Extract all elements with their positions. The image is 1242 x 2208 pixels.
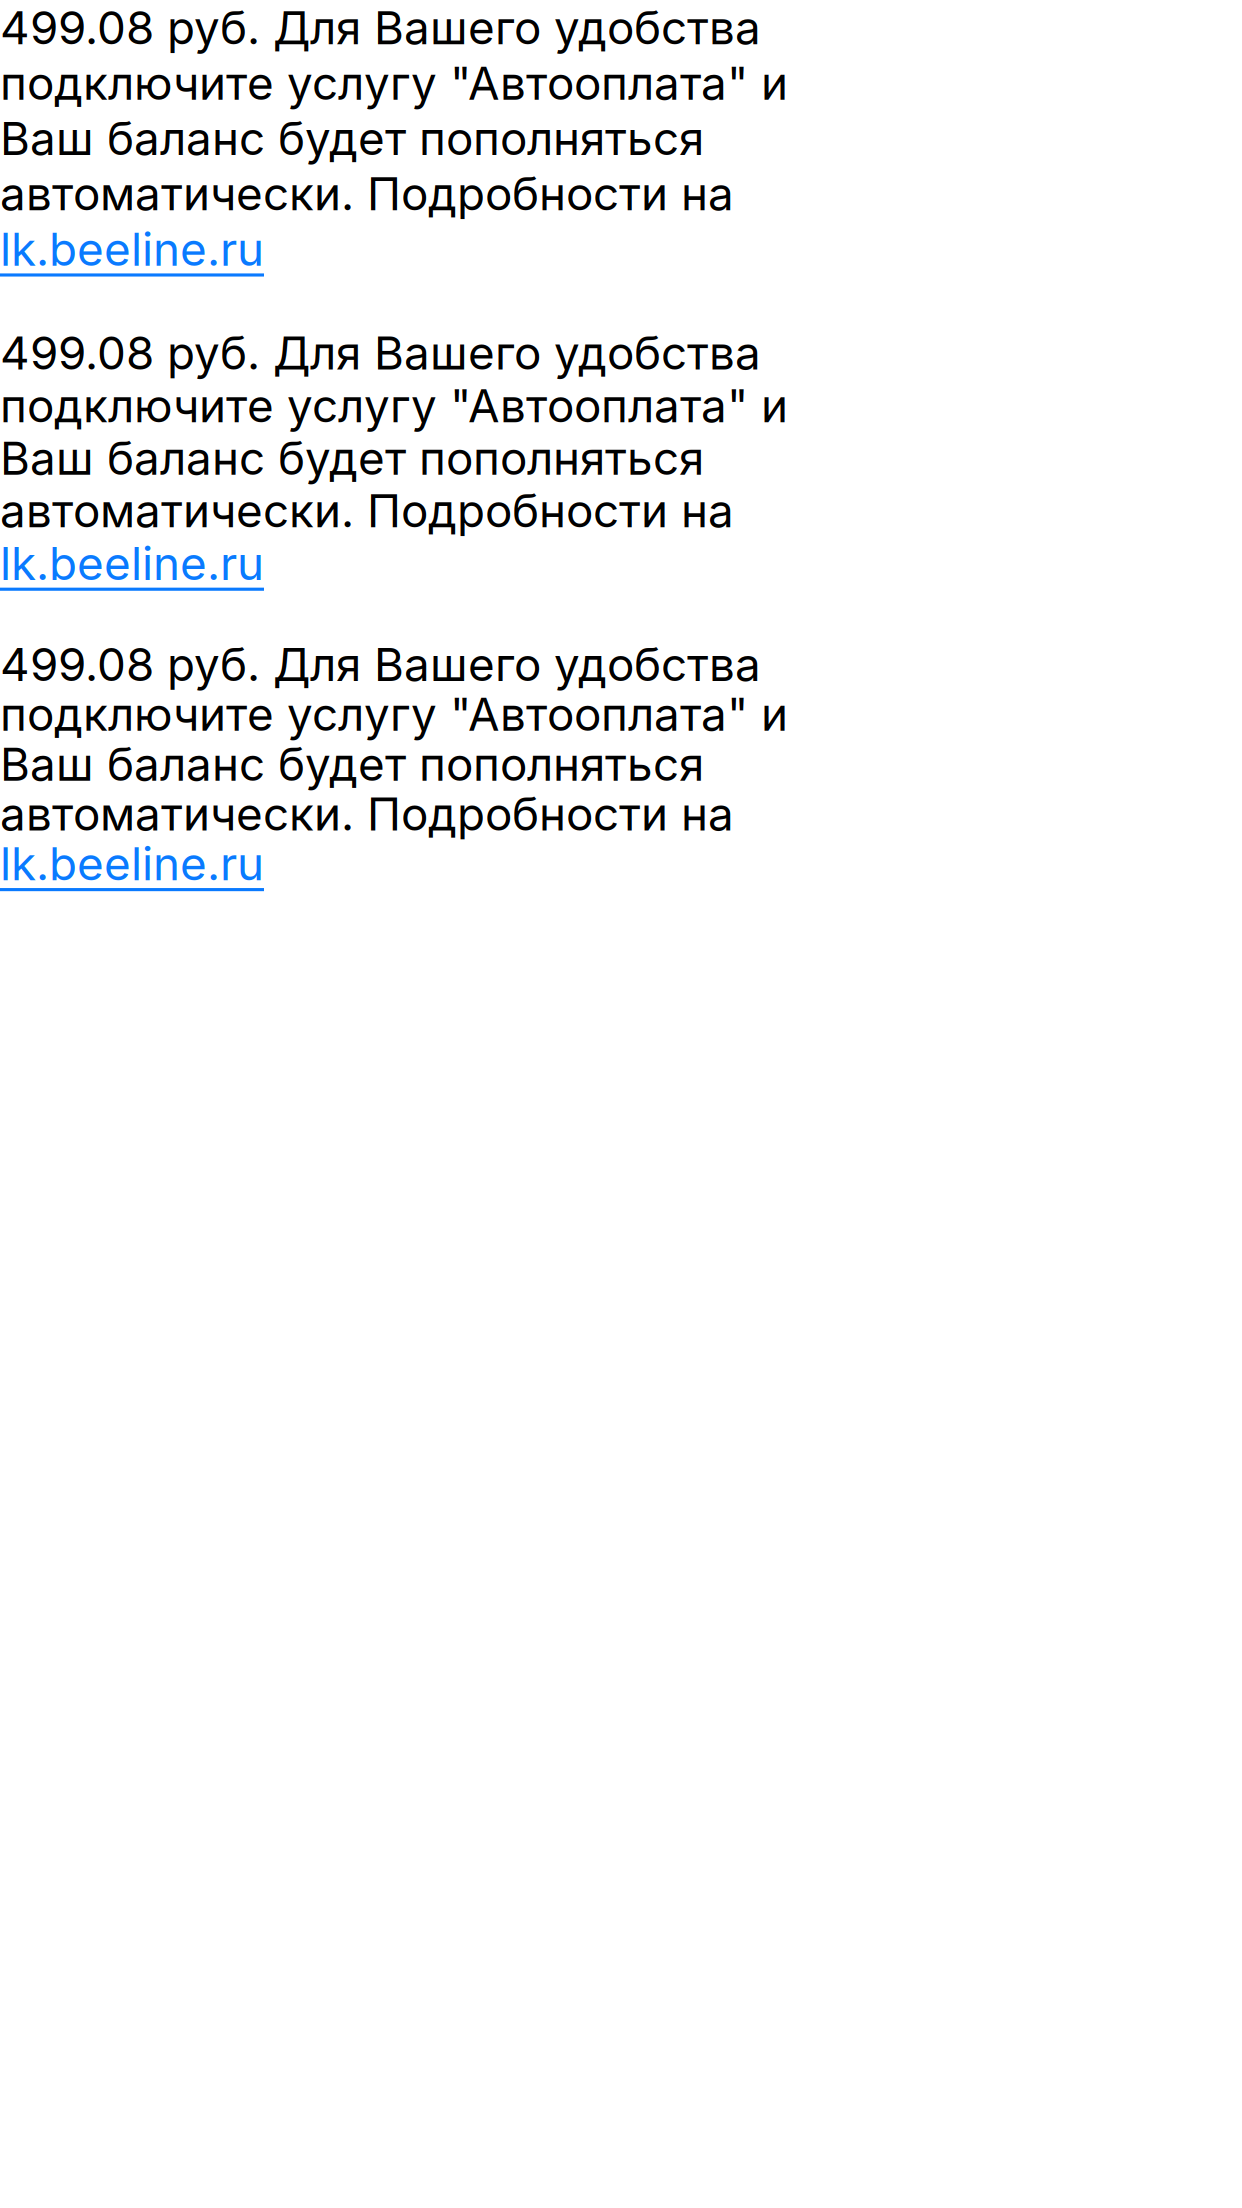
staticText: 499.08 руб. Для Вашего удобства подключи…: [0, 639, 788, 888]
staticText: 499.08 руб. Для Вашего удобства подключи…: [0, 327, 788, 589]
staticText: 499.08 руб. Для Вашего удобства подключи…: [0, 0, 788, 277]
